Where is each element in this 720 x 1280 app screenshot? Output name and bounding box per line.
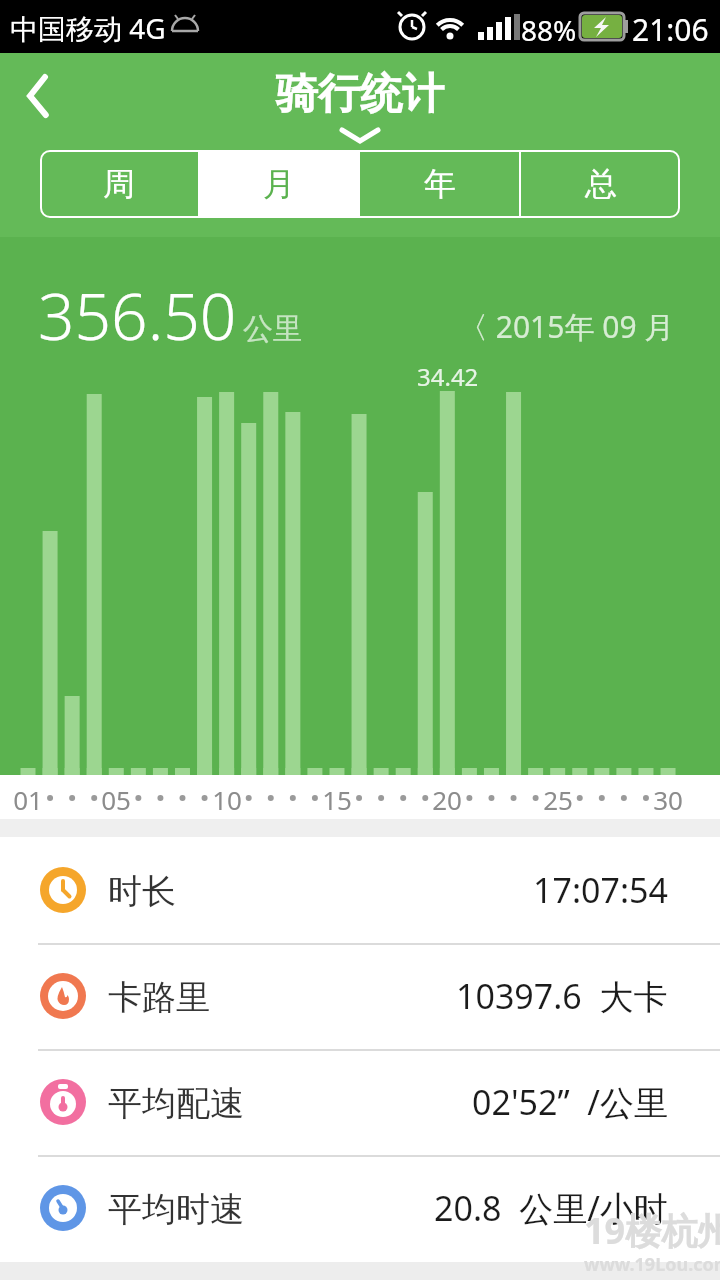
staticText: 骑行统计 bbox=[0, 68, 720, 121]
staticText: 年 bbox=[424, 164, 456, 204]
staticText: 356.50 bbox=[38, 272, 237, 359]
staticText: 卡路里 bbox=[108, 976, 210, 1019]
button[interactable] bbox=[6, 66, 66, 126]
staticText: www.19Lou.com bbox=[584, 1252, 720, 1277]
staticText: 〈 2015年 09 月 bbox=[458, 306, 675, 347]
button[interactable]: 平均时速 bbox=[0, 1155, 720, 1261]
staticText: 19楼杭州 bbox=[584, 1206, 720, 1255]
button[interactable]: 周 bbox=[40, 150, 198, 218]
staticText: 中国移动 4G bbox=[10, 9, 166, 47]
button[interactable]: 年 bbox=[360, 150, 519, 218]
staticText: 平均时速 bbox=[108, 1188, 244, 1231]
staticText: 总 bbox=[585, 164, 617, 204]
staticText: 02'52” /公里 bbox=[472, 1079, 668, 1125]
staticText: 21:06 bbox=[632, 9, 709, 50]
staticText: 20.8 公里/小时 bbox=[434, 1185, 668, 1231]
staticText: 10 bbox=[202, 782, 252, 817]
staticText: 34.42 bbox=[417, 360, 479, 393]
staticText: 01 bbox=[3, 782, 53, 817]
button[interactable]: 时长 bbox=[0, 837, 720, 943]
button[interactable]: 月 bbox=[200, 150, 358, 218]
button[interactable]: 卡路里 bbox=[0, 943, 720, 1049]
staticText: 10397.6 大卡 bbox=[456, 973, 668, 1019]
staticText: 30 bbox=[643, 782, 693, 817]
staticText: 周 bbox=[103, 164, 135, 204]
staticText: 15 bbox=[312, 782, 362, 817]
staticText: 05 bbox=[91, 782, 141, 817]
staticText: 25 bbox=[533, 782, 583, 817]
staticText: 平均配速 bbox=[108, 1082, 244, 1125]
staticText: 20 bbox=[422, 782, 472, 817]
button[interactable]: 总 bbox=[521, 150, 680, 218]
staticText: 月 bbox=[263, 164, 295, 204]
button[interactable]: 平均配速 bbox=[0, 1049, 720, 1155]
button[interactable]: 〈 2015年 09 月 bbox=[440, 300, 690, 350]
staticText: 88% bbox=[521, 11, 577, 49]
staticText: 公里 bbox=[243, 310, 303, 348]
staticText: 时长 bbox=[108, 870, 176, 913]
staticText: 17:07:54 bbox=[533, 867, 668, 913]
